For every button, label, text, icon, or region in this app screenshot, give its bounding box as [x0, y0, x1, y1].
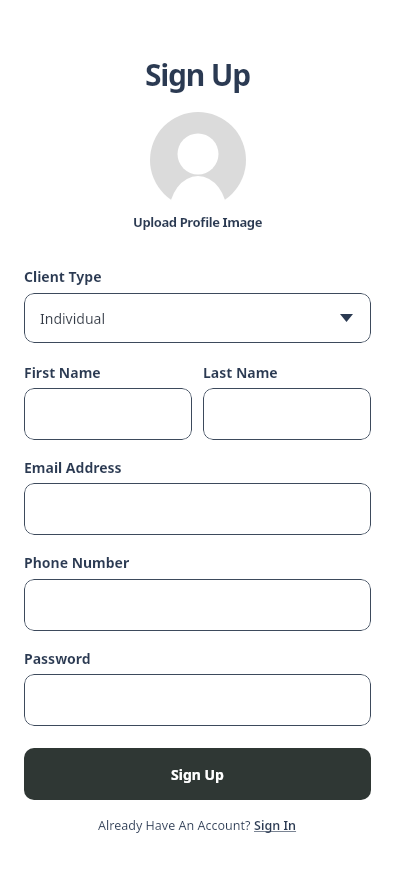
staticText: Email Address	[24, 458, 122, 477]
button[interactable]	[24, 579, 371, 631]
button[interactable]: Individual	[24, 293, 371, 343]
staticText: Sign Up	[171, 765, 224, 784]
button[interactable]	[203, 388, 371, 440]
button[interactable]	[24, 674, 371, 726]
button[interactable]: Sign In	[254, 817, 297, 834]
button[interactable]	[150, 112, 246, 208]
staticText: Individual	[40, 309, 106, 328]
button[interactable]	[24, 483, 371, 535]
button[interactable]: Upload Profile Image	[133, 213, 262, 231]
button[interactable]: Sign Up	[24, 748, 371, 800]
staticText: Already Have An Account?	[98, 817, 254, 834]
staticText: Phone Number	[24, 553, 130, 572]
button[interactable]	[24, 388, 192, 440]
staticText: Sign Up	[145, 54, 250, 95]
staticText: First Name	[24, 363, 101, 382]
staticText: Last Name	[203, 363, 278, 382]
staticText: Password	[24, 649, 91, 668]
staticText: Client Type	[24, 267, 102, 286]
